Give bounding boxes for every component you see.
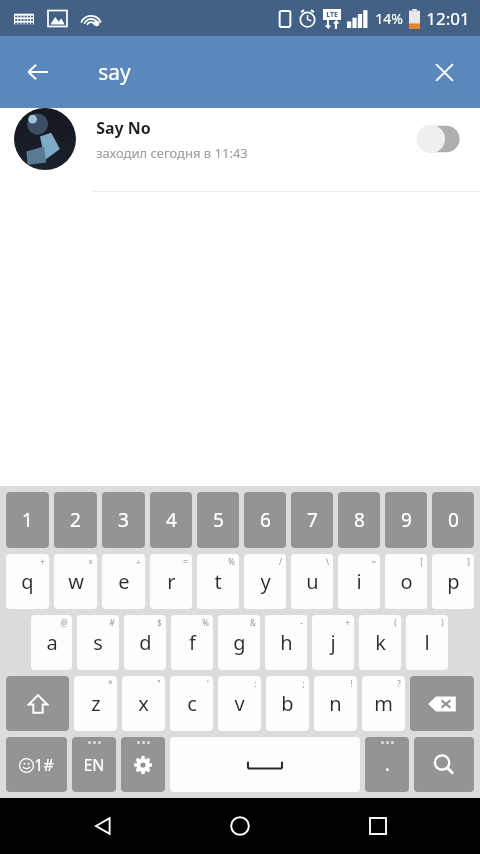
button[interactable]: r xyxy=(150,554,192,609)
button[interactable]: h xyxy=(265,615,307,670)
staticText: 12:01 xyxy=(426,7,470,30)
button[interactable]: g xyxy=(218,615,260,670)
button[interactable]: j xyxy=(312,615,354,670)
staticText: % xyxy=(228,556,235,567)
button[interactable]: Recents xyxy=(343,798,413,854)
button[interactable]: v xyxy=(218,676,261,731)
staticText: 2 xyxy=(70,507,81,533)
staticText: u xyxy=(306,568,319,595)
button[interactable]: Symbols xyxy=(6,737,67,792)
staticText: say xyxy=(98,58,131,87)
button[interactable]: k xyxy=(359,615,401,670)
button[interactable]: 4 xyxy=(150,492,192,548)
staticText: ( xyxy=(394,617,397,628)
staticText: m xyxy=(374,690,393,717)
staticText: k xyxy=(375,629,386,656)
staticText: заходил сегодня в 11:43 xyxy=(96,144,248,162)
staticText: " xyxy=(157,678,161,689)
button[interactable]: a xyxy=(31,615,72,670)
button[interactable]: m xyxy=(362,676,405,731)
staticText: * xyxy=(108,678,113,689)
button[interactable]: s xyxy=(77,615,119,670)
button[interactable]: Back xyxy=(10,44,66,100)
button[interactable]: z xyxy=(74,676,117,731)
button[interactable]: . xyxy=(365,737,409,792)
staticText: i xyxy=(356,568,362,595)
staticText: o xyxy=(400,568,413,595)
button[interactable]: Back xyxy=(68,798,138,854)
button[interactable]: 2 xyxy=(54,492,97,548)
staticText: f xyxy=(189,629,196,656)
button[interactable]: o xyxy=(385,554,427,609)
button[interactable]: Backspace xyxy=(410,676,474,731)
staticText: 6 xyxy=(260,507,271,533)
button[interactable]: Search xyxy=(414,737,474,792)
button[interactable] xyxy=(408,122,464,156)
staticText: × xyxy=(88,556,93,567)
button[interactable]: 5 xyxy=(197,492,239,548)
button[interactable]: Shift xyxy=(6,676,69,731)
staticText: + xyxy=(40,556,45,567)
staticText: 14% xyxy=(375,9,403,28)
staticText: r xyxy=(167,568,176,595)
staticText: t xyxy=(214,568,222,595)
staticText: ] xyxy=(467,556,470,567)
button[interactable]: c xyxy=(170,676,213,731)
button[interactable]: y xyxy=(244,554,286,609)
button[interactable]: w xyxy=(54,554,97,609)
staticText: l xyxy=(424,629,430,656)
staticText: p xyxy=(447,568,460,595)
button[interactable]: f xyxy=(171,615,213,670)
button[interactable]: q xyxy=(6,554,49,609)
button[interactable]: Home xyxy=(205,798,275,854)
staticText: j xyxy=(330,629,336,656)
button[interactable]: x xyxy=(122,676,165,731)
button[interactable]: b xyxy=(266,676,309,731)
staticText: . xyxy=(385,752,390,777)
staticText: ' xyxy=(207,678,209,689)
staticText: + xyxy=(345,617,350,628)
button[interactable]: l xyxy=(406,615,448,670)
staticText: y xyxy=(260,568,271,595)
staticText: 3 xyxy=(118,507,129,533)
button[interactable]: p xyxy=(432,554,474,609)
staticText: n xyxy=(329,690,342,717)
staticText: ; xyxy=(302,678,305,689)
button[interactable]: 6 xyxy=(244,492,286,548)
button[interactable]: d xyxy=(124,615,166,670)
button[interactable]: i xyxy=(338,554,380,609)
button[interactable]: e xyxy=(102,554,145,609)
staticText: 9 xyxy=(401,507,412,533)
button[interactable]: Space xyxy=(170,737,360,792)
button[interactable]: Settings xyxy=(121,737,165,792)
staticText: [ xyxy=(420,556,423,567)
staticText: v xyxy=(234,690,245,717)
staticText: \ xyxy=(326,556,329,567)
button[interactable]: 0 xyxy=(432,492,474,548)
button[interactable]: u xyxy=(291,554,333,609)
button[interactable]: 8 xyxy=(338,492,380,548)
button[interactable]: t xyxy=(197,554,239,609)
staticText: ÷ xyxy=(136,556,141,567)
staticText: ? xyxy=(397,678,401,689)
button[interactable]: Say No xyxy=(0,108,480,192)
button[interactable]: 1 xyxy=(6,492,49,548)
staticText: 8 xyxy=(354,507,365,533)
staticText: z xyxy=(91,690,101,717)
staticText: s xyxy=(93,629,103,656)
button[interactable]: 9 xyxy=(385,492,427,548)
staticText: c xyxy=(187,690,197,717)
button[interactable]: 3 xyxy=(102,492,145,548)
staticText: q xyxy=(21,568,34,595)
button[interactable]: n xyxy=(314,676,357,731)
staticText: 1 xyxy=(22,507,33,533)
button[interactable]: EN xyxy=(72,737,116,792)
button[interactable]: Clear xyxy=(416,44,472,100)
staticText: = xyxy=(183,556,188,567)
staticText: ) xyxy=(441,617,444,628)
button[interactable]: 7 xyxy=(291,492,333,548)
staticText: @ xyxy=(60,617,68,628)
staticText: ! xyxy=(350,678,353,689)
staticText: w xyxy=(68,568,84,595)
staticText: % xyxy=(202,617,209,628)
